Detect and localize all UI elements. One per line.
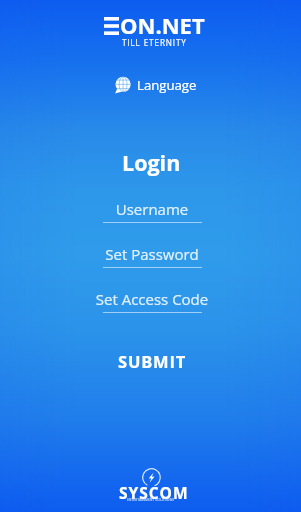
button[interactable]: Set Access Code: [67, 289, 237, 313]
button[interactable]: Language: [111, 74, 201, 96]
button[interactable]: SUBMIT: [100, 344, 205, 378]
button[interactable]: Set Password: [67, 244, 237, 268]
staticText: ENTERTAINMENT SOLUTIONS: [127, 498, 175, 502]
staticText: SUBMIT: [118, 350, 187, 372]
staticText: Set Password: [67, 244, 237, 264]
staticText: Username: [67, 199, 237, 219]
staticText: SYSCOM: [119, 482, 189, 503]
button[interactable]: Username: [67, 199, 237, 223]
staticText: ON.NET: [120, 10, 205, 40]
staticText: Set Access Code: [67, 289, 237, 309]
staticText: TILL ETERNITY: [122, 37, 187, 48]
staticText: Login: [122, 148, 181, 177]
staticText: Language: [137, 76, 197, 94]
other: Language: [115, 77, 131, 93]
